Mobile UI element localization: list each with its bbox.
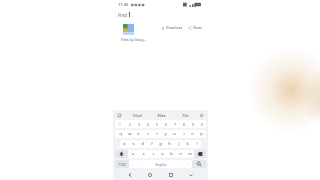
staticText: 11:45 bbox=[118, 2, 129, 7]
button[interactable]: Files bbox=[149, 111, 173, 119]
staticText: 0 bbox=[201, 122, 203, 126]
button[interactable]: j bbox=[174, 140, 183, 148]
button[interactable]: i bbox=[179, 130, 188, 138]
button[interactable]: 8 bbox=[179, 120, 188, 128]
button[interactable]: u bbox=[170, 130, 179, 138]
staticText: ?123 bbox=[118, 162, 126, 166]
staticText: e bbox=[137, 131, 140, 137]
staticText: Share bbox=[193, 25, 203, 30]
button[interactable]: 1 bbox=[115, 120, 125, 128]
staticText: 1 bbox=[119, 122, 121, 126]
button[interactable]: n bbox=[176, 150, 185, 158]
button[interactable]: 0 bbox=[197, 120, 206, 128]
button[interactable]: z bbox=[128, 150, 138, 158]
staticText: c bbox=[152, 151, 155, 157]
staticText: English bbox=[155, 162, 167, 166]
button[interactable]: ?123 bbox=[115, 160, 129, 168]
button[interactable]: a bbox=[120, 140, 129, 148]
button[interactable]: Keyboard settings bbox=[199, 113, 204, 118]
staticText: s bbox=[132, 141, 135, 147]
button[interactable]: Backspace bbox=[194, 150, 206, 158]
button[interactable]: d bbox=[138, 140, 147, 148]
staticText: p bbox=[200, 131, 203, 137]
staticText: l bbox=[196, 141, 198, 147]
button[interactable]: 2 bbox=[125, 120, 134, 128]
staticText: m bbox=[188, 151, 192, 157]
button[interactable]: q bbox=[115, 130, 125, 138]
button[interactable]: Home bbox=[146, 171, 154, 179]
button[interactable]: t bbox=[152, 130, 161, 138]
button[interactable]: Filed bbox=[125, 111, 149, 119]
button[interactable]: 7 bbox=[170, 120, 179, 128]
button[interactable]: Back bbox=[126, 171, 134, 179]
staticText: f bbox=[151, 141, 153, 147]
staticText: j bbox=[178, 141, 180, 147]
button[interactable]: w bbox=[125, 130, 134, 138]
button[interactable]: , bbox=[129, 160, 137, 168]
staticText: a bbox=[123, 141, 126, 147]
staticText: d bbox=[141, 141, 144, 147]
button[interactable]: Search bbox=[192, 160, 206, 168]
staticText: 7 bbox=[174, 122, 176, 126]
staticText: 3 bbox=[138, 122, 140, 126]
button[interactable]: 5 bbox=[152, 120, 161, 128]
button[interactable]: g bbox=[156, 140, 165, 148]
staticText: 9 bbox=[192, 122, 194, 126]
staticText: q bbox=[119, 131, 122, 137]
staticText: b bbox=[170, 151, 173, 157]
button[interactable]: p bbox=[197, 130, 206, 138]
staticText: n bbox=[179, 151, 182, 157]
staticText: o bbox=[191, 131, 194, 137]
staticText: File bbox=[182, 113, 189, 118]
button[interactable]: Download bbox=[123, 24, 204, 35]
button[interactable]: Keyboard down bbox=[187, 171, 195, 179]
button[interactable]: Share bbox=[187, 24, 204, 31]
button[interactable]: l bbox=[192, 140, 201, 148]
staticText: 5 bbox=[156, 122, 158, 126]
button[interactable]: x bbox=[138, 150, 148, 158]
button[interactable]: k bbox=[183, 140, 192, 148]
staticText: Filed bbox=[133, 113, 142, 118]
staticText: Files by Goog… bbox=[121, 37, 147, 42]
staticText: h bbox=[168, 141, 171, 147]
button[interactable]: s bbox=[129, 140, 138, 148]
staticText: v bbox=[161, 151, 164, 157]
staticText: i bbox=[183, 131, 185, 137]
button[interactable]: m bbox=[185, 150, 194, 158]
button[interactable]: y bbox=[161, 130, 170, 138]
button[interactable]: 6 bbox=[161, 120, 170, 128]
staticText: t bbox=[156, 131, 158, 137]
button[interactable]: v bbox=[158, 150, 167, 158]
staticText: z bbox=[132, 151, 134, 157]
button[interactable]: Clipboard bbox=[117, 113, 122, 118]
staticText: r bbox=[147, 131, 149, 137]
button[interactable]: e bbox=[134, 130, 143, 138]
button[interactable]: b bbox=[167, 150, 176, 158]
button[interactable]: Find bbox=[118, 9, 208, 20]
staticText: , bbox=[132, 161, 134, 167]
button[interactable]: File bbox=[173, 111, 197, 119]
staticText: Find bbox=[118, 12, 128, 18]
staticText: 8 bbox=[183, 122, 185, 126]
button[interactable]: Shift bbox=[115, 150, 128, 158]
button[interactable]: f bbox=[147, 140, 156, 148]
button[interactable]: 9 bbox=[188, 120, 197, 128]
button[interactable]: Recents bbox=[167, 171, 175, 179]
button[interactable]: 3 bbox=[134, 120, 143, 128]
button[interactable]: Space bbox=[137, 160, 184, 168]
staticText: w bbox=[128, 131, 132, 137]
button[interactable]: h bbox=[165, 140, 174, 148]
staticText: x bbox=[142, 151, 145, 157]
button[interactable]: r bbox=[143, 130, 152, 138]
button[interactable]: c bbox=[148, 150, 158, 158]
button[interactable]: o bbox=[188, 130, 197, 138]
staticText: Download bbox=[166, 25, 183, 30]
staticText: 4 bbox=[147, 122, 149, 126]
staticText: g bbox=[159, 141, 162, 147]
staticText: . bbox=[187, 161, 189, 167]
button[interactable]: 4 bbox=[143, 120, 152, 128]
staticText: 2 bbox=[129, 122, 131, 126]
staticText: Files bbox=[157, 113, 166, 118]
button[interactable]: Download bbox=[160, 24, 184, 31]
